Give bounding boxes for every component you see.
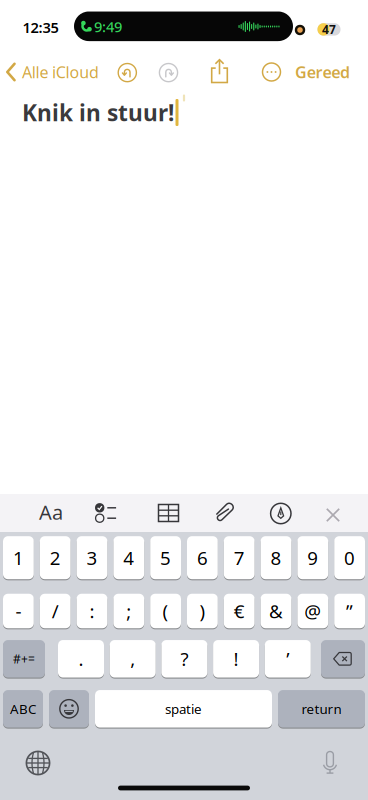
staticText: ” <box>346 599 353 623</box>
staticText: return <box>301 700 341 718</box>
staticText: 9:49 <box>94 17 122 36</box>
staticText: 4 <box>123 545 134 570</box>
button[interactable]: 1 <box>3 535 34 580</box>
staticText: ’ <box>286 646 289 671</box>
button[interactable]: ABC <box>3 689 43 728</box>
button[interactable]: 2 <box>40 535 71 580</box>
button[interactable]: ! <box>213 639 259 678</box>
button[interactable]: ? <box>161 639 207 678</box>
staticText: : <box>89 599 94 623</box>
button[interactable]: Share <box>210 58 228 86</box>
staticText: Alle iCloud <box>22 61 99 83</box>
staticText: 2 <box>50 545 61 570</box>
staticText: spatie <box>165 700 202 718</box>
staticText: . <box>78 646 83 671</box>
button[interactable]: : <box>77 593 107 629</box>
button[interactable]: Attach <box>214 501 236 523</box>
staticText: 5 <box>160 545 171 570</box>
button[interactable]: 7 <box>224 535 255 580</box>
button[interactable]: & <box>261 593 291 629</box>
button[interactable]: 5 <box>150 535 181 580</box>
button[interactable]: , <box>110 639 156 678</box>
button[interactable]: 0 <box>334 535 365 580</box>
button[interactable]: € <box>224 593 255 629</box>
staticText: Aa <box>39 499 63 525</box>
staticText: Gereed <box>295 61 350 83</box>
button[interactable]: / <box>40 593 71 629</box>
button[interactable]: Checklist <box>94 502 116 524</box>
button[interactable]: 4 <box>113 535 144 580</box>
button[interactable]: 8 <box>261 535 291 580</box>
button[interactable]: @ <box>297 593 328 629</box>
button[interactable]: return <box>278 689 365 728</box>
button[interactable]: 3 <box>77 535 107 580</box>
staticText: 3 <box>86 545 97 570</box>
button[interactable]: ” <box>334 593 365 629</box>
button[interactable]: 9 <box>297 535 328 580</box>
staticText: & <box>269 599 283 623</box>
button[interactable]: ; <box>113 593 144 629</box>
button[interactable]: ( <box>150 593 181 629</box>
button[interactable]: - <box>3 593 34 629</box>
staticText: ! <box>234 646 239 671</box>
button[interactable]: . <box>58 639 104 678</box>
button[interactable]: Dictation <box>322 749 338 774</box>
staticText: € <box>234 599 245 623</box>
staticText: / <box>52 599 59 623</box>
button[interactable]: Table <box>157 503 180 523</box>
button[interactable]: Emoji <box>49 689 89 728</box>
button[interactable]: Format <box>39 499 63 525</box>
button[interactable]: ) <box>187 593 218 629</box>
staticText: 8 <box>270 545 281 570</box>
staticText: 1 <box>13 545 24 570</box>
staticText: Knik in stuur! <box>22 97 174 127</box>
button[interactable]: Next keyboard <box>26 751 50 775</box>
staticText: ; <box>126 599 131 623</box>
button[interactable]: spatie <box>95 689 272 728</box>
staticText: 7 <box>234 545 245 570</box>
button[interactable]: Delete <box>321 639 365 678</box>
staticText: ? <box>180 646 188 671</box>
staticText: ( <box>163 599 169 623</box>
staticText: ABC <box>10 700 36 718</box>
button[interactable]: Alle iCloud <box>6 57 166 87</box>
button[interactable]: More <box>261 62 281 82</box>
staticText: 0 <box>344 545 355 570</box>
button[interactable]: Redo <box>158 63 178 83</box>
staticText: #+= <box>13 651 35 667</box>
button[interactable]: 6 <box>187 535 218 580</box>
button[interactable]: ’ <box>265 639 311 678</box>
button[interactable]: #+= <box>3 639 45 678</box>
staticText: , <box>130 646 135 671</box>
staticText: 12:35 <box>22 18 58 37</box>
staticText: 47 <box>322 21 336 37</box>
staticText: - <box>15 599 21 623</box>
staticText: ) <box>199 599 205 623</box>
button[interactable]: Dismiss keyboard <box>326 508 340 522</box>
staticText: 9 <box>307 545 318 570</box>
button[interactable]: Markup <box>270 502 292 524</box>
button[interactable]: Undo <box>117 63 137 83</box>
staticText: 6 <box>197 545 208 570</box>
staticText: @ <box>304 599 321 623</box>
button[interactable]: Gereed <box>260 57 350 87</box>
